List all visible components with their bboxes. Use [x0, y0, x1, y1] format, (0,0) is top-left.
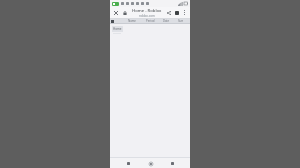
button[interactable]: Site information	[121, 9, 128, 16]
button[interactable]: Recent apps	[168, 159, 176, 167]
button[interactable]: Home - Roblox	[129, 8, 164, 18]
staticText: Period	[146, 19, 155, 23]
staticText: Home - Roblox	[132, 8, 162, 14]
button[interactable]: More options	[181, 9, 188, 16]
staticText: Home	[113, 27, 122, 31]
button[interactable]: Tabs	[173, 9, 181, 17]
button[interactable]: Home	[146, 159, 155, 168]
button[interactable]: Share	[165, 9, 173, 17]
button[interactable]: Close	[112, 9, 120, 17]
staticText: Size	[178, 19, 184, 23]
staticText: roblox.com	[139, 14, 155, 18]
button[interactable]: Home	[112, 26, 123, 32]
staticText: Name	[128, 19, 136, 23]
button[interactable]: Back	[124, 159, 132, 167]
staticText: Date	[163, 19, 170, 23]
